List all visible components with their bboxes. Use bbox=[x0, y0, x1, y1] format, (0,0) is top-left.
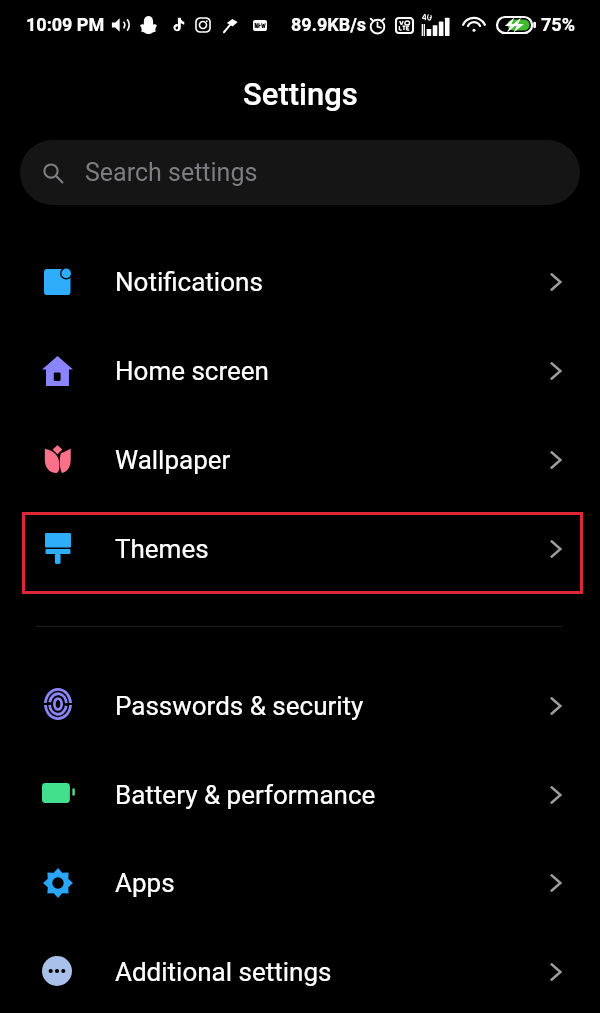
staticText: Apps bbox=[115, 868, 175, 898]
button[interactable]: Notifications bbox=[0, 237, 600, 326]
staticText: Settings bbox=[243, 76, 358, 112]
button[interactable]: Themes bbox=[0, 504, 600, 593]
staticText: Themes bbox=[115, 534, 209, 564]
staticText: Home screen bbox=[115, 356, 269, 386]
staticText: Battery & performance bbox=[115, 780, 376, 810]
staticText: Passwords & security bbox=[115, 691, 364, 721]
staticText: 10:09 PM bbox=[26, 14, 105, 35]
button[interactable]: Battery & performance bbox=[0, 750, 600, 839]
staticText: 75% bbox=[541, 14, 575, 35]
button[interactable]: Home screen bbox=[0, 326, 600, 415]
staticText: Wallpaper bbox=[115, 445, 231, 475]
staticText: Additional settings bbox=[115, 957, 332, 987]
button[interactable]: Wallpaper bbox=[0, 415, 600, 504]
staticText: Search settings bbox=[85, 158, 258, 187]
button[interactable]: Additional settings bbox=[0, 927, 600, 1013]
button[interactable]: Passwords & security bbox=[0, 661, 600, 750]
button[interactable]: Apps bbox=[0, 838, 600, 927]
staticText: 89.9KB/s bbox=[291, 14, 367, 35]
staticText: Notifications bbox=[115, 267, 263, 297]
button[interactable]: Search settings bbox=[20, 140, 580, 205]
